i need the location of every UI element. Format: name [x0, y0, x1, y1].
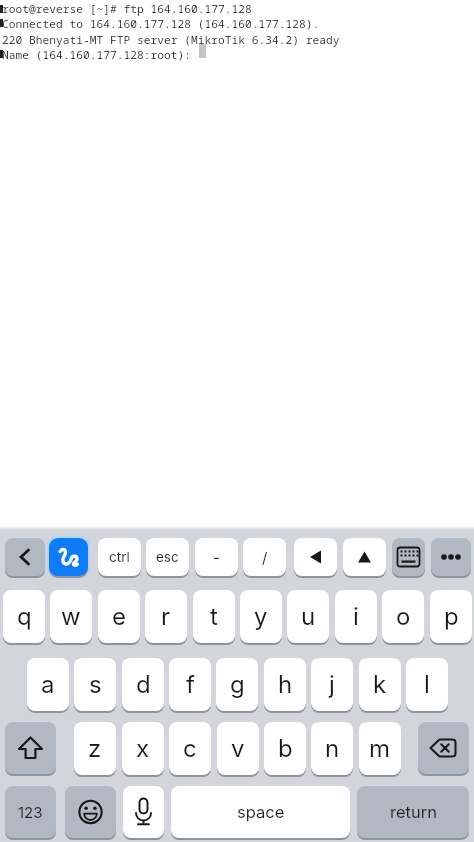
- button[interactable]: n: [311, 722, 353, 775]
- staticText: q: [17, 602, 32, 631]
- button[interactable]: k: [359, 658, 401, 711]
- staticText: o: [396, 602, 411, 631]
- button[interactable]: q: [3, 590, 45, 643]
- button[interactable]: v: [217, 722, 259, 775]
- button[interactable]: p: [430, 590, 472, 643]
- button[interactable]: b: [264, 722, 306, 775]
- staticText: 220 Bhenyati-MT FTP server (MikroTik 6.3…: [2, 32, 340, 47]
- staticText: -: [213, 548, 220, 566]
- button[interactable]: [392, 538, 425, 576]
- button[interactable]: esc: [146, 538, 189, 576]
- button[interactable]: o: [382, 590, 424, 643]
- button[interactable]: space: [171, 786, 350, 838]
- staticText: Connected to 164.160.177.128 (164.160.17…: [2, 16, 320, 31]
- button[interactable]: m: [359, 722, 401, 775]
- staticText: c: [183, 734, 197, 763]
- button[interactable]: h: [264, 658, 306, 711]
- button[interactable]: [418, 722, 469, 774]
- button[interactable]: x: [122, 722, 164, 775]
- staticText: l: [424, 670, 430, 699]
- button[interactable]: [5, 538, 45, 576]
- button[interactable]: [294, 538, 337, 576]
- button[interactable]: c: [169, 722, 211, 775]
- button[interactable]: /: [243, 538, 286, 576]
- button[interactable]: t: [193, 590, 235, 643]
- button[interactable]: z: [74, 722, 116, 775]
- staticText: i: [353, 602, 359, 631]
- button[interactable]: g: [216, 658, 258, 711]
- staticText: z: [88, 734, 102, 763]
- button[interactable]: w: [50, 590, 92, 643]
- staticText: d: [136, 670, 151, 699]
- staticText: r: [161, 602, 171, 631]
- staticText: e: [112, 602, 126, 631]
- button[interactable]: d: [122, 658, 164, 711]
- staticText: j: [329, 670, 335, 699]
- staticText: ctrl: [109, 549, 130, 565]
- staticText: Name (164.160.177.128:root):: [2, 47, 192, 62]
- button[interactable]: [5, 722, 56, 774]
- button[interactable]: j: [311, 658, 353, 711]
- button[interactable]: l: [406, 658, 448, 711]
- button[interactable]: 123: [5, 786, 56, 838]
- button[interactable]: [343, 538, 386, 576]
- button[interactable]: [49, 538, 88, 576]
- staticText: /: [262, 548, 268, 566]
- button[interactable]: u: [287, 590, 329, 643]
- staticText: s: [89, 670, 102, 699]
- button[interactable]: ctrl: [98, 538, 141, 576]
- staticText: a: [41, 670, 55, 699]
- button[interactable]: return: [357, 786, 469, 838]
- staticText: space: [237, 802, 285, 822]
- button[interactable]: -: [195, 538, 238, 576]
- staticText: return: [390, 802, 437, 822]
- staticText: g: [230, 670, 245, 699]
- staticText: h: [278, 670, 293, 699]
- button[interactable]: a: [27, 658, 69, 711]
- staticText: t: [210, 602, 218, 631]
- staticText: root@reverse [~]# ftp 164.160.177.128: [2, 1, 252, 16]
- button[interactable]: s: [74, 658, 116, 711]
- staticText: f: [186, 670, 195, 699]
- button[interactable]: [123, 786, 164, 838]
- button[interactable]: i: [335, 590, 377, 643]
- staticText: 123: [18, 803, 43, 821]
- staticText: v: [231, 734, 245, 763]
- button[interactable]: [431, 538, 471, 576]
- staticText: n: [325, 734, 340, 763]
- button[interactable]: y: [240, 590, 282, 643]
- staticText: m: [369, 734, 391, 763]
- staticText: esc: [156, 549, 179, 565]
- button[interactable]: e: [98, 590, 140, 643]
- staticText: w: [61, 602, 81, 631]
- staticText: x: [136, 734, 150, 763]
- staticText: y: [254, 602, 268, 631]
- staticText: b: [278, 734, 293, 763]
- staticText: p: [444, 602, 459, 631]
- button[interactable]: [65, 786, 116, 838]
- staticText: k: [373, 670, 387, 699]
- staticText: u: [301, 602, 316, 631]
- button[interactable]: r: [145, 590, 187, 643]
- button[interactable]: f: [169, 658, 211, 711]
